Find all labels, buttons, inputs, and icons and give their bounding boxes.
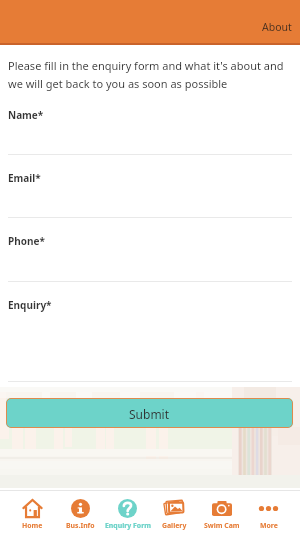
button[interactable]: Swim Cam <box>198 491 245 533</box>
staticText: Home <box>22 521 43 530</box>
staticText: Swim Cam <box>204 521 240 530</box>
staticText: Enquiry Form <box>105 521 151 530</box>
staticText: About <box>262 20 292 34</box>
staticText: More <box>260 521 278 530</box>
staticText: Name* <box>8 108 44 122</box>
staticText: Submit <box>129 406 170 422</box>
button[interactable]: More <box>245 491 292 533</box>
staticText: Bus.Info <box>66 521 95 530</box>
button[interactable]: About <box>252 16 300 38</box>
button[interactable]: Bus.Info <box>56 491 104 533</box>
staticText: Email* <box>8 171 41 185</box>
staticText: Enquiry* <box>8 298 52 312</box>
staticText: Please fill in the enquiry form and what… <box>8 58 292 91</box>
button[interactable]: Enquiry Form <box>104 491 151 533</box>
button[interactable]: Submit <box>6 398 293 428</box>
staticText: Phone* <box>8 234 45 248</box>
button[interactable]: Home <box>8 491 56 533</box>
button[interactable]: Gallery <box>151 491 198 533</box>
staticText: Gallery <box>162 521 187 530</box>
